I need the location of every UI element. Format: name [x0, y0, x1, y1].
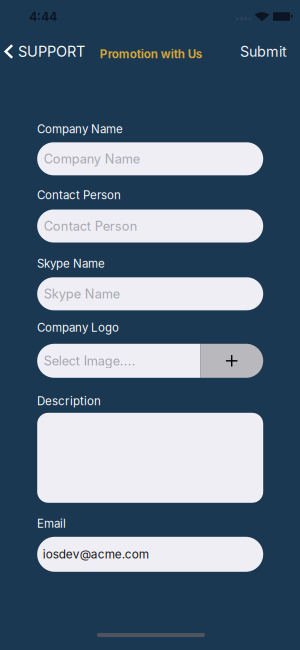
- staticText: iosdev@acme.com: [43, 547, 149, 561]
- staticText: Contact Person: [44, 218, 138, 234]
- staticText: Email: [37, 516, 66, 530]
- staticText: Company Name: [44, 151, 140, 167]
- staticText: 4:44: [29, 9, 57, 24]
- staticText: Contact Person: [37, 188, 121, 202]
- staticText: Skype Name: [44, 286, 120, 302]
- staticText: Submit: [240, 43, 287, 60]
- staticText: Description: [37, 394, 101, 408]
- staticText: Promotion with Us: [100, 47, 202, 61]
- staticText: Company Logo: [37, 320, 119, 334]
- staticText: Select Image....: [44, 353, 136, 369]
- staticText: SUPPORT: [18, 43, 85, 60]
- staticText: Skype Name: [37, 256, 105, 270]
- staticText: Company Name: [37, 122, 123, 136]
